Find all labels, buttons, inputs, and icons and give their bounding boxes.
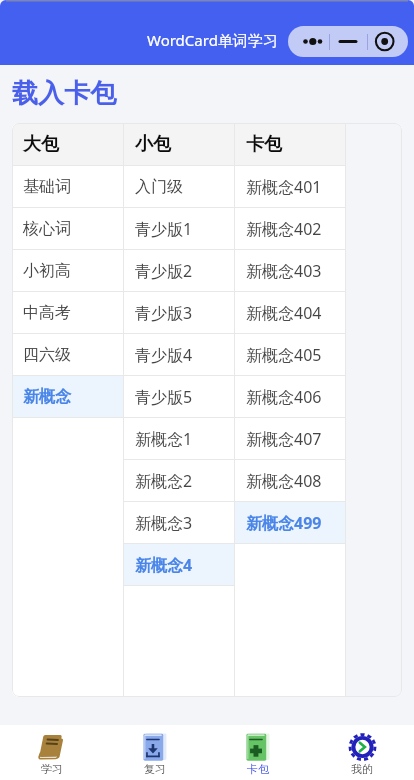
button[interactable]: 卡包: [206, 725, 310, 780]
button[interactable]: 青少版4: [124, 334, 234, 375]
staticText: 青少版5: [135, 386, 193, 408]
button[interactable]: 新概念403: [235, 250, 345, 291]
staticText: 卡包: [247, 762, 269, 776]
staticText: 新概念407: [246, 428, 322, 450]
staticText: 基础词: [23, 177, 71, 197]
button[interactable]: 新概念407: [235, 418, 345, 459]
staticText: 核心词: [23, 219, 71, 239]
button[interactable]: 小初高: [12, 250, 123, 291]
staticText: 新概念408: [246, 470, 322, 492]
button[interactable]: 新概念401: [235, 166, 345, 207]
button[interactable]: 入门级: [124, 166, 234, 207]
staticText: 小初高: [23, 261, 71, 281]
staticText: 新概念499: [246, 512, 322, 534]
staticText: 新概念402: [246, 218, 322, 240]
button[interactable]: 新概念405: [235, 334, 345, 375]
staticText: 新概念4: [135, 554, 193, 576]
staticText: 新概念405: [246, 344, 322, 366]
button[interactable]: 我的: [310, 725, 414, 780]
staticText: 载入卡包: [12, 77, 116, 110]
button[interactable]: 四六级: [12, 334, 123, 375]
button[interactable]: 新概念406: [235, 376, 345, 417]
button[interactable]: 新概念404: [235, 292, 345, 333]
staticText: 入门级: [135, 177, 183, 197]
staticText: 青少版2: [135, 260, 193, 282]
staticText: 新概念406: [246, 386, 322, 408]
button[interactable]: 新概念2: [124, 460, 234, 501]
button[interactable]: 复习: [103, 725, 206, 780]
button[interactable]: 青少版1: [124, 208, 234, 249]
button[interactable]: 基础词: [12, 166, 123, 207]
button[interactable]: 新概念: [12, 376, 123, 417]
button[interactable]: More options: [288, 26, 329, 57]
staticText: 新概念2: [135, 470, 193, 492]
staticText: 四六级: [23, 345, 71, 365]
button[interactable]: 中高考: [12, 292, 123, 333]
staticText: 中高考: [23, 303, 71, 323]
button[interactable]: 青少版3: [124, 292, 234, 333]
staticText: 新概念401: [246, 176, 322, 198]
staticText: 小包: [135, 133, 171, 156]
button[interactable]: 新概念4: [124, 544, 234, 585]
button[interactable]: 新概念408: [235, 460, 345, 501]
staticText: 我的: [351, 762, 373, 776]
button[interactable]: 核心词: [12, 208, 123, 249]
button[interactable]: 青少版5: [124, 376, 234, 417]
button[interactable]: 新概念402: [235, 208, 345, 249]
staticText: 新概念1: [135, 428, 193, 450]
button[interactable]: 新概念1: [124, 418, 234, 459]
button[interactable]: Minimise: [330, 26, 367, 57]
button[interactable]: 青少版2: [124, 250, 234, 291]
staticText: 复习: [144, 762, 166, 776]
staticText: 卡包: [246, 133, 282, 156]
staticText: 学习: [41, 762, 63, 776]
staticText: 新概念403: [246, 260, 322, 282]
button[interactable]: 学习: [0, 725, 103, 780]
staticText: 大包: [23, 133, 59, 156]
staticText: 青少版1: [135, 218, 193, 240]
staticText: WordCard单词学习: [147, 30, 278, 50]
staticText: 新概念: [23, 387, 71, 407]
staticText: 新概念3: [135, 512, 193, 534]
button[interactable]: 新概念499: [235, 502, 345, 543]
staticText: 青少版4: [135, 344, 193, 366]
button[interactable]: 新概念3: [124, 502, 234, 543]
staticText: 新概念404: [246, 302, 322, 324]
button[interactable]: Close: [368, 26, 408, 57]
staticText: 青少版3: [135, 302, 193, 324]
